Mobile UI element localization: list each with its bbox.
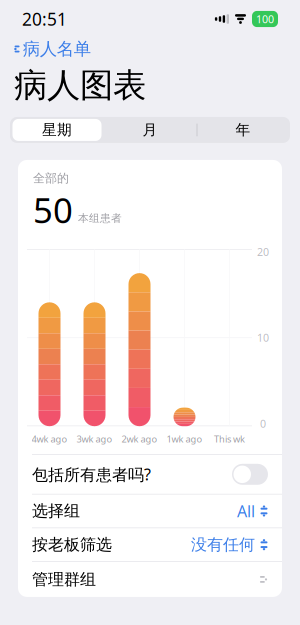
- button[interactable]: 年: [196, 117, 289, 143]
- staticText: 4wk ago: [31, 433, 67, 445]
- staticText: 20:51: [22, 7, 67, 30]
- button[interactable]: 病人名单: [0, 35, 103, 63]
- staticText: 50: [33, 187, 73, 233]
- staticText: 100: [256, 12, 274, 26]
- staticText: 0: [260, 417, 266, 431]
- staticText: 月: [142, 121, 157, 139]
- staticText: 1wk ago: [166, 433, 202, 445]
- staticText: 选择组: [32, 501, 80, 521]
- staticText: 病人名单: [23, 38, 91, 60]
- button[interactable]: 按老板筛选: [18, 528, 282, 561]
- button[interactable]: 包括所有患者吗?: [18, 455, 282, 494]
- staticText: 10: [257, 331, 269, 345]
- staticText: 年: [235, 121, 250, 139]
- staticText: 按老板筛选: [32, 535, 112, 555]
- staticText: 管理群组: [32, 570, 96, 589]
- staticText: 2wk ago: [121, 433, 157, 445]
- staticText: This wk: [214, 433, 245, 445]
- button[interactable]: 选择组: [18, 494, 282, 527]
- staticText: All: [237, 500, 255, 522]
- staticText: 全部的: [33, 171, 69, 186]
- staticText: 没有任何: [191, 535, 255, 555]
- staticText: 本组患者: [78, 212, 122, 225]
- staticText: 20: [257, 245, 269, 259]
- button[interactable]: 管理群组: [18, 562, 282, 597]
- staticText: 星期: [42, 121, 72, 139]
- staticText: 病人图表: [14, 65, 146, 106]
- button[interactable]: 星期: [10, 117, 103, 143]
- staticText: 包括所有患者吗?: [32, 464, 151, 485]
- staticText: 3wk ago: [76, 433, 112, 445]
- button[interactable]: 月: [103, 117, 196, 143]
